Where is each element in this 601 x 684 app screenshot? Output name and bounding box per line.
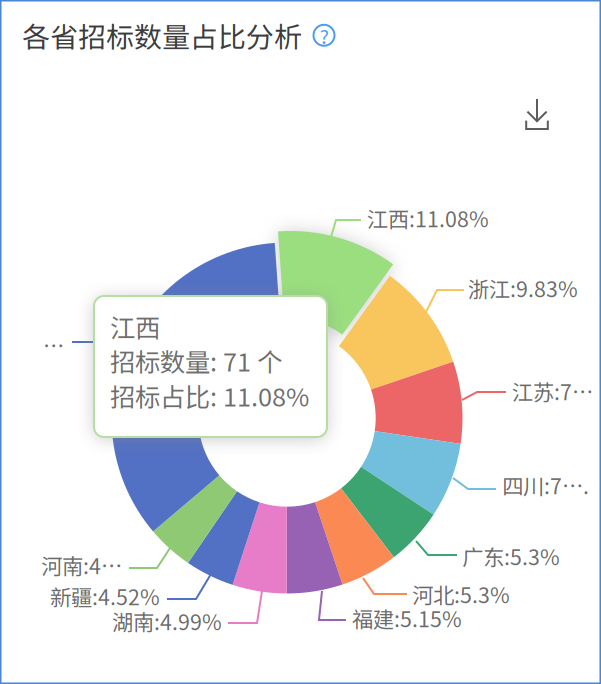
staticText: 四川:7….: [502, 470, 589, 500]
staticText: 江西: [110, 308, 160, 345]
staticText: 福建:5.15%: [352, 603, 462, 633]
staticText: 江西:11.08%: [367, 203, 489, 233]
staticText: 招标数量: 71 个: [110, 342, 282, 379]
staticText: 新疆:4.52%: [50, 581, 160, 611]
staticText: ?: [319, 21, 328, 50]
staticText: 浙江:9.83%: [468, 273, 578, 303]
staticText: …: [43, 330, 64, 360]
staticText: 湖南:4.99%: [112, 606, 222, 636]
staticText: 河北:5.3%: [412, 579, 510, 609]
button[interactable]: Download: [516, 93, 558, 135]
staticText: 广东:5.3%: [462, 541, 560, 571]
staticText: 招标占比: 11.08%: [110, 377, 309, 414]
staticText: 河南:4…: [41, 550, 122, 580]
staticText: 江苏:7…: [512, 376, 593, 406]
staticText: 各省招标数量占比分析: [22, 15, 302, 55]
